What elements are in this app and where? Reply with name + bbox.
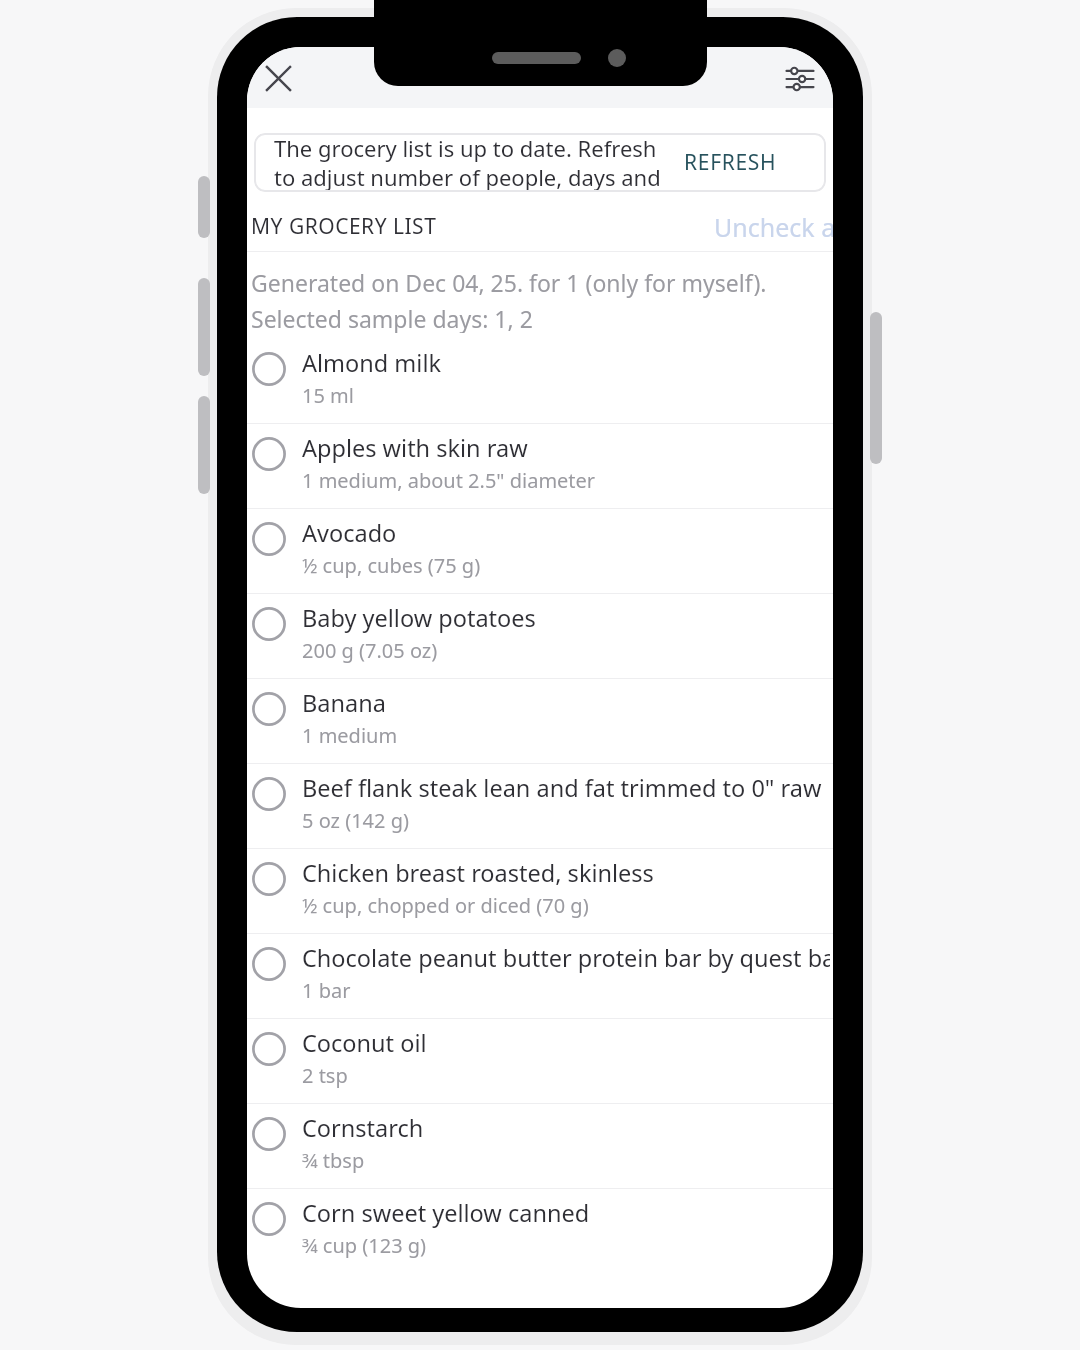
button[interactable]: Corn sweet yellow canned [247,1188,833,1273]
button[interactable]: Almond milk [247,338,833,423]
button[interactable]: Beef flank steak lean and fat trimmed to… [247,763,833,848]
staticText: Chocolate peanut butter protein bar by q… [302,942,830,974]
staticText: Corn sweet yellow canned [302,1197,590,1229]
button[interactable]: Apples with skin raw [247,423,833,508]
staticText: Chicken breast roasted, skinless [302,857,654,889]
button[interactable]: Close [249,49,307,107]
staticText: Coconut oil [302,1027,427,1059]
staticText: 2 tsp [302,1062,348,1089]
button[interactable]: Chocolate peanut butter protein bar by q… [247,933,833,1018]
button[interactable]: REFRESH [663,133,798,192]
staticText: Avocado [302,517,397,549]
staticText: 1 medium [302,722,398,749]
button[interactable]: Adjust list settings [771,50,829,108]
staticText: Uncheck all [714,210,833,244]
staticText: Almond milk [302,347,442,379]
staticText: Apples with skin raw [302,432,528,464]
button[interactable]: Avocado [247,508,833,593]
staticText: ¾ tbsp [302,1147,365,1174]
staticText: The grocery list is up to date. Refresh … [274,133,679,192]
button[interactable]: Banana [247,678,833,763]
staticText: MY GROCERY LIST [251,212,437,241]
staticText: 15 ml [302,382,354,409]
staticText: Cornstarch [302,1112,424,1144]
staticText: 1 bar [302,977,351,1004]
staticText: 1 medium, about 2.5" diameter [302,467,596,494]
staticText: Baby yellow potatoes [302,602,536,634]
staticText: Banana [302,687,386,719]
button[interactable]: Chicken breast roasted, skinless [247,848,833,933]
staticText: 5 oz (142 g) [302,807,409,834]
staticText: REFRESH [684,148,777,177]
staticText: Beef flank steak lean and fat trimmed to… [302,772,822,804]
button[interactable]: Baby yellow potatoes [247,593,833,678]
staticText: ½ cup, chopped or diced (70 g) [302,892,589,919]
staticText: ½ cup, cubes (75 g) [302,552,481,579]
staticText: ¾ cup (123 g) [302,1232,427,1259]
button[interactable]: Coconut oil [247,1018,833,1103]
button[interactable]: Uncheck all [714,210,833,244]
staticText: Generated on Dec 04, 25. for 1 (only for… [251,267,767,298]
button[interactable]: Cornstarch [247,1103,833,1188]
staticText: Selected sample days: 1, 2 [251,303,533,333]
staticText: 200 g (7.05 oz) [302,637,438,664]
